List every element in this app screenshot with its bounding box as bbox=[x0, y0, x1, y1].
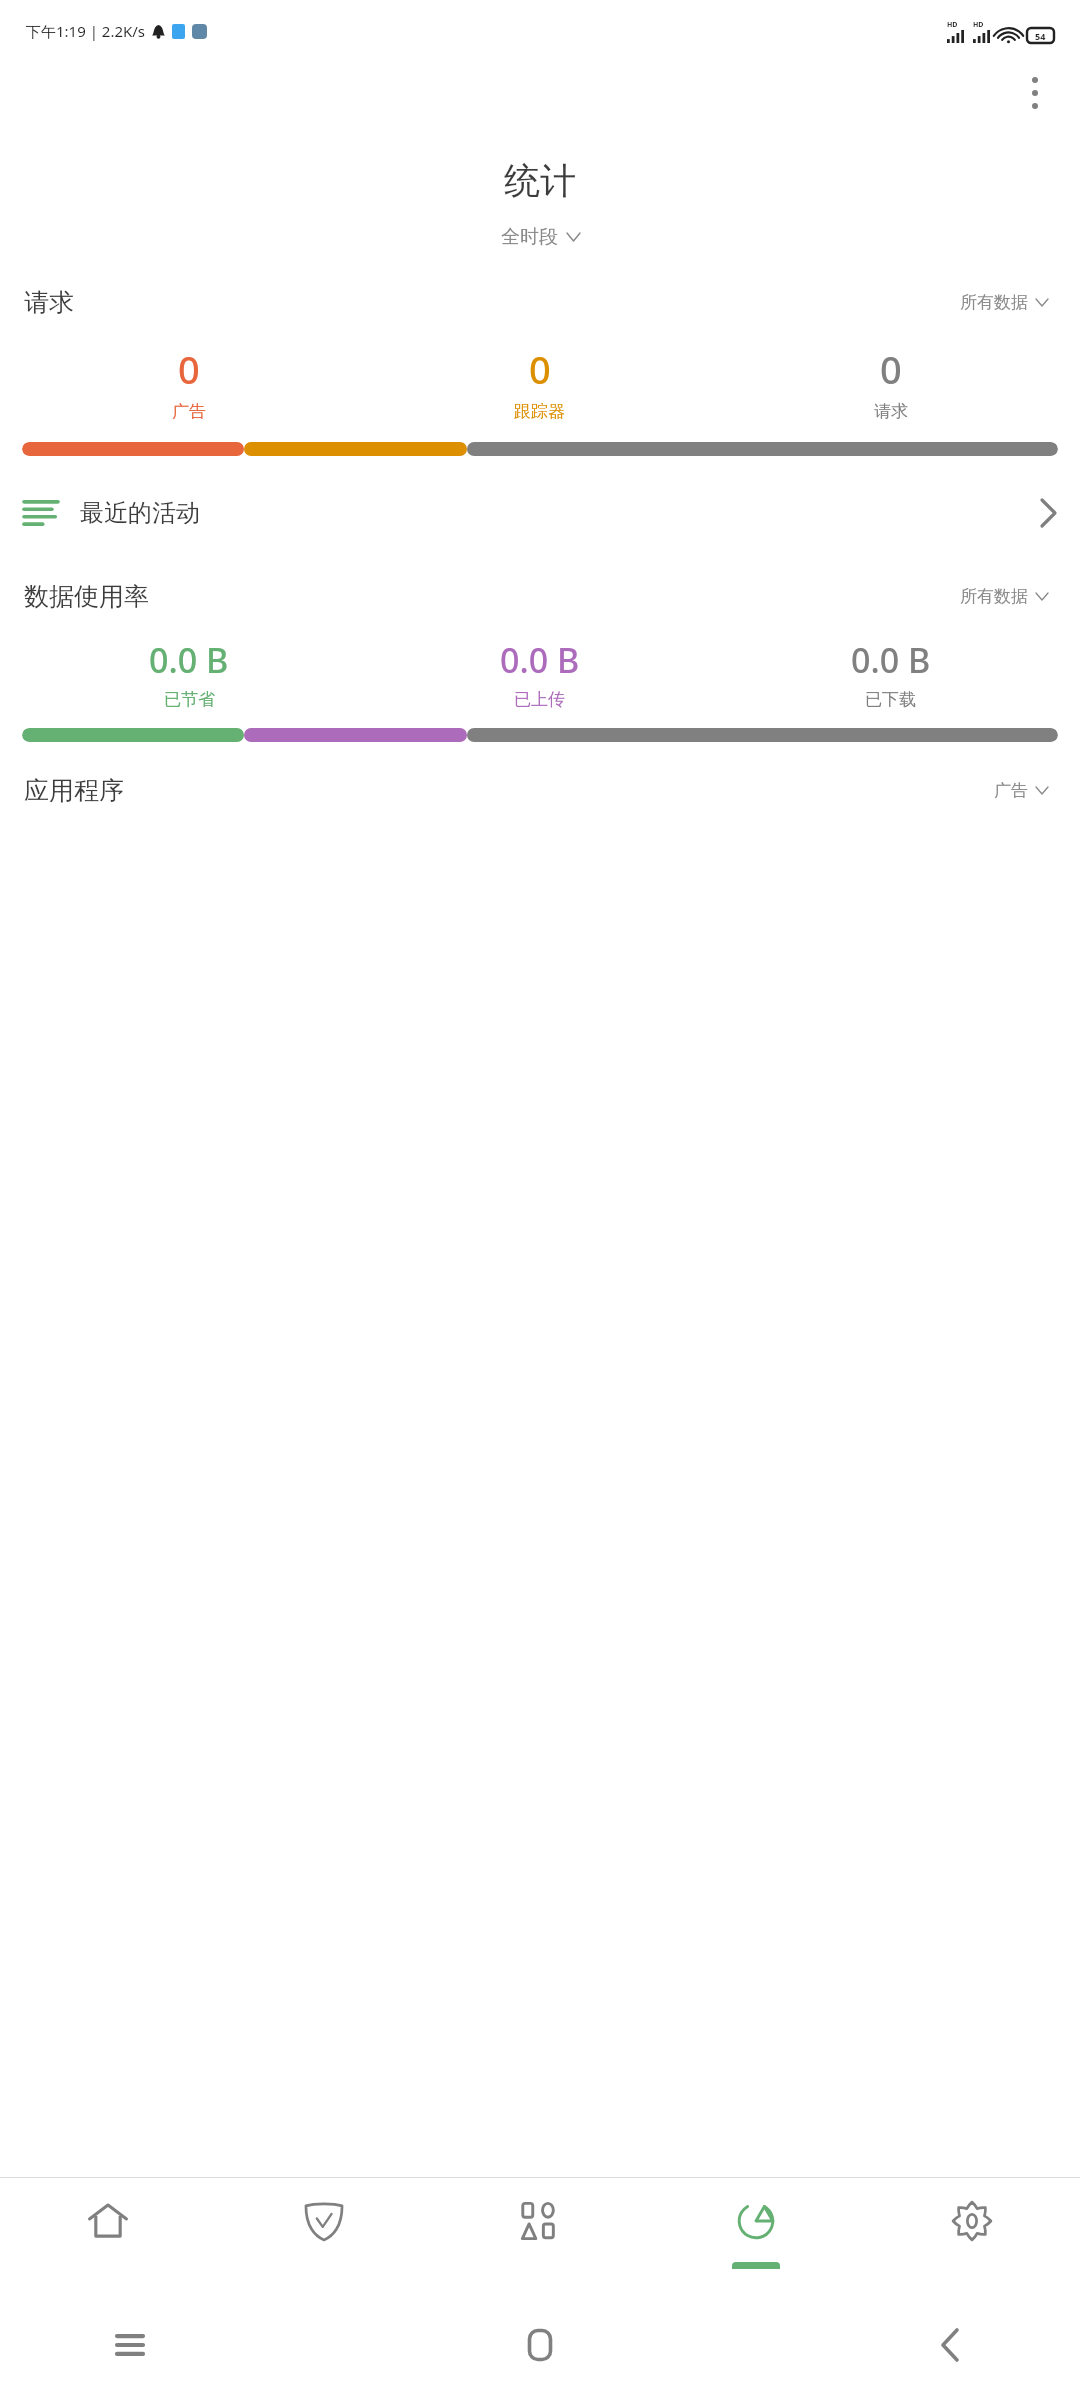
button[interactable]: 应用 bbox=[432, 2178, 648, 2290]
staticText: 已下载 bbox=[865, 689, 916, 710]
button[interactable]: 0.0 B bbox=[715, 635, 1066, 712]
staticText: 全时段 bbox=[501, 225, 558, 249]
staticText: 请求 bbox=[874, 401, 908, 422]
button[interactable]: 0 bbox=[14, 341, 364, 424]
staticText: 0.0 B bbox=[851, 637, 931, 683]
button[interactable]: 全时段 bbox=[491, 221, 590, 253]
staticText: 广告 bbox=[994, 780, 1028, 801]
button[interactable]: 保护 bbox=[216, 2178, 432, 2290]
staticText: 已上传 bbox=[514, 689, 565, 710]
button[interactable]: 广告 bbox=[986, 774, 1056, 807]
staticText: 统计 bbox=[0, 158, 1080, 203]
staticText: 请求 bbox=[24, 287, 74, 318]
staticText: 54 bbox=[1035, 30, 1046, 42]
button[interactable]: 0 bbox=[364, 341, 715, 424]
staticText: 0 bbox=[529, 343, 551, 395]
button[interactable]: 所有数据 bbox=[952, 580, 1056, 613]
staticText: 所有数据 bbox=[960, 586, 1028, 607]
staticText: 已节省 bbox=[164, 689, 215, 710]
button[interactable]: 0.0 B bbox=[364, 635, 715, 712]
staticText: 0 bbox=[178, 343, 200, 395]
staticText: 0.0 B bbox=[500, 637, 580, 683]
staticText: 跟踪器 bbox=[514, 401, 565, 422]
button[interactable]: 最近任务 bbox=[90, 2305, 170, 2385]
staticText: 所有数据 bbox=[960, 292, 1028, 313]
button[interactable]: 更多选项 bbox=[1010, 68, 1060, 118]
staticText: 应用程序 bbox=[24, 775, 124, 806]
button[interactable]: 返回 bbox=[910, 2305, 990, 2385]
staticText: HD bbox=[973, 20, 984, 30]
button[interactable]: 主屏幕 bbox=[500, 2305, 580, 2385]
staticText: 0.0 B bbox=[149, 637, 229, 683]
button[interactable]: 统计 bbox=[648, 2178, 864, 2290]
button[interactable]: 最近的活动 bbox=[0, 488, 1080, 538]
staticText: 下午1:19 | 2.2K/s bbox=[26, 21, 146, 41]
staticText: HD bbox=[947, 20, 958, 30]
button[interactable]: 0 bbox=[715, 341, 1066, 424]
staticText: 广告 bbox=[172, 401, 206, 422]
staticText: 最近的活动 bbox=[80, 498, 200, 528]
button[interactable]: 0.0 B bbox=[14, 635, 364, 712]
staticText: 数据使用率 bbox=[24, 581, 149, 612]
button[interactable]: 主页 bbox=[0, 2178, 216, 2290]
staticText: 0 bbox=[880, 343, 902, 395]
button[interactable]: 所有数据 bbox=[952, 286, 1056, 319]
button[interactable]: 设置 bbox=[864, 2178, 1080, 2290]
